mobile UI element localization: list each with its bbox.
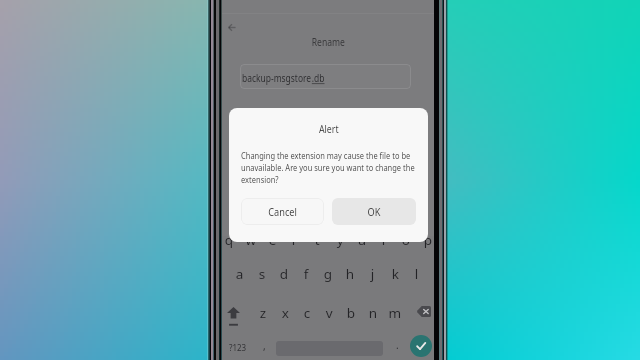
button[interactable]: Cancel — [241, 198, 324, 225]
staticText: u — [358, 232, 366, 249]
staticText: c — [304, 305, 311, 322]
button[interactable]: p — [417, 229, 439, 251]
button[interactable]: q — [218, 229, 240, 251]
staticText: r — [292, 232, 298, 249]
button[interactable]: Backspace — [411, 298, 437, 324]
staticText: x — [282, 305, 289, 322]
staticText: Rename — [312, 34, 345, 49]
staticText: backup-msgstore — [242, 70, 312, 86]
staticText: b — [347, 305, 355, 322]
button[interactable]: v — [318, 302, 340, 324]
button[interactable]: o — [395, 229, 417, 251]
staticText: .db — [312, 70, 325, 86]
staticText: d — [280, 266, 288, 283]
staticText: OK — [368, 205, 380, 219]
staticText: Changing the extension may cause the fil… — [241, 149, 418, 186]
button[interactable]: r — [284, 229, 306, 251]
staticText: j — [371, 266, 375, 283]
button[interactable]: Back — [223, 19, 239, 35]
button[interactable]: Enter — [410, 335, 432, 357]
staticText: m — [388, 305, 401, 322]
button[interactable]: l — [406, 263, 428, 285]
button[interactable]: w — [240, 229, 262, 251]
staticText: a — [236, 266, 244, 283]
button[interactable]: e — [262, 229, 284, 251]
button[interactable]: b — [340, 302, 362, 324]
button[interactable]: OK — [332, 198, 416, 225]
button[interactable]: g — [317, 263, 339, 285]
staticText: e — [269, 232, 277, 249]
button[interactable]: t — [306, 229, 328, 251]
staticText: w — [246, 232, 256, 249]
staticText: . — [396, 338, 399, 352]
button[interactable]: y — [329, 229, 351, 251]
button[interactable]: u — [351, 229, 373, 251]
staticText: i — [382, 232, 386, 249]
button[interactable]: j — [362, 263, 384, 285]
button[interactable]: Shift — [220, 304, 246, 330]
button[interactable]: ?123 — [222, 334, 254, 360]
button[interactable]: a — [229, 263, 251, 285]
staticText: , — [263, 339, 266, 353]
button[interactable]: m — [384, 302, 406, 324]
staticText: z — [260, 305, 266, 322]
staticText: h — [346, 266, 354, 283]
staticText: k — [392, 266, 399, 283]
staticText: g — [324, 266, 332, 283]
staticText: l — [415, 266, 419, 283]
staticText: y — [337, 232, 344, 249]
staticText: n — [369, 305, 377, 322]
button[interactable]: s — [251, 263, 273, 285]
staticText: Alert — [319, 122, 339, 136]
button[interactable]: i — [373, 229, 395, 251]
staticText: Cancel — [268, 205, 298, 219]
staticText: o — [402, 232, 410, 249]
staticText: p — [424, 232, 432, 249]
staticText: f — [304, 266, 309, 283]
button[interactable]: h — [339, 263, 361, 285]
staticText: t — [315, 232, 320, 249]
staticText: s — [259, 266, 265, 283]
button[interactable]: n — [362, 302, 384, 324]
button[interactable] — [240, 64, 411, 89]
button[interactable]: , — [254, 334, 274, 360]
button[interactable]: d — [273, 263, 295, 285]
button[interactable]: f — [295, 263, 317, 285]
button[interactable]: c — [296, 302, 318, 324]
button[interactable]: k — [384, 263, 406, 285]
button[interactable]: x — [274, 302, 296, 324]
button[interactable]: z — [252, 302, 274, 324]
staticText: q — [225, 232, 233, 249]
staticText: v — [326, 305, 333, 322]
staticText: ?123 — [229, 342, 247, 353]
